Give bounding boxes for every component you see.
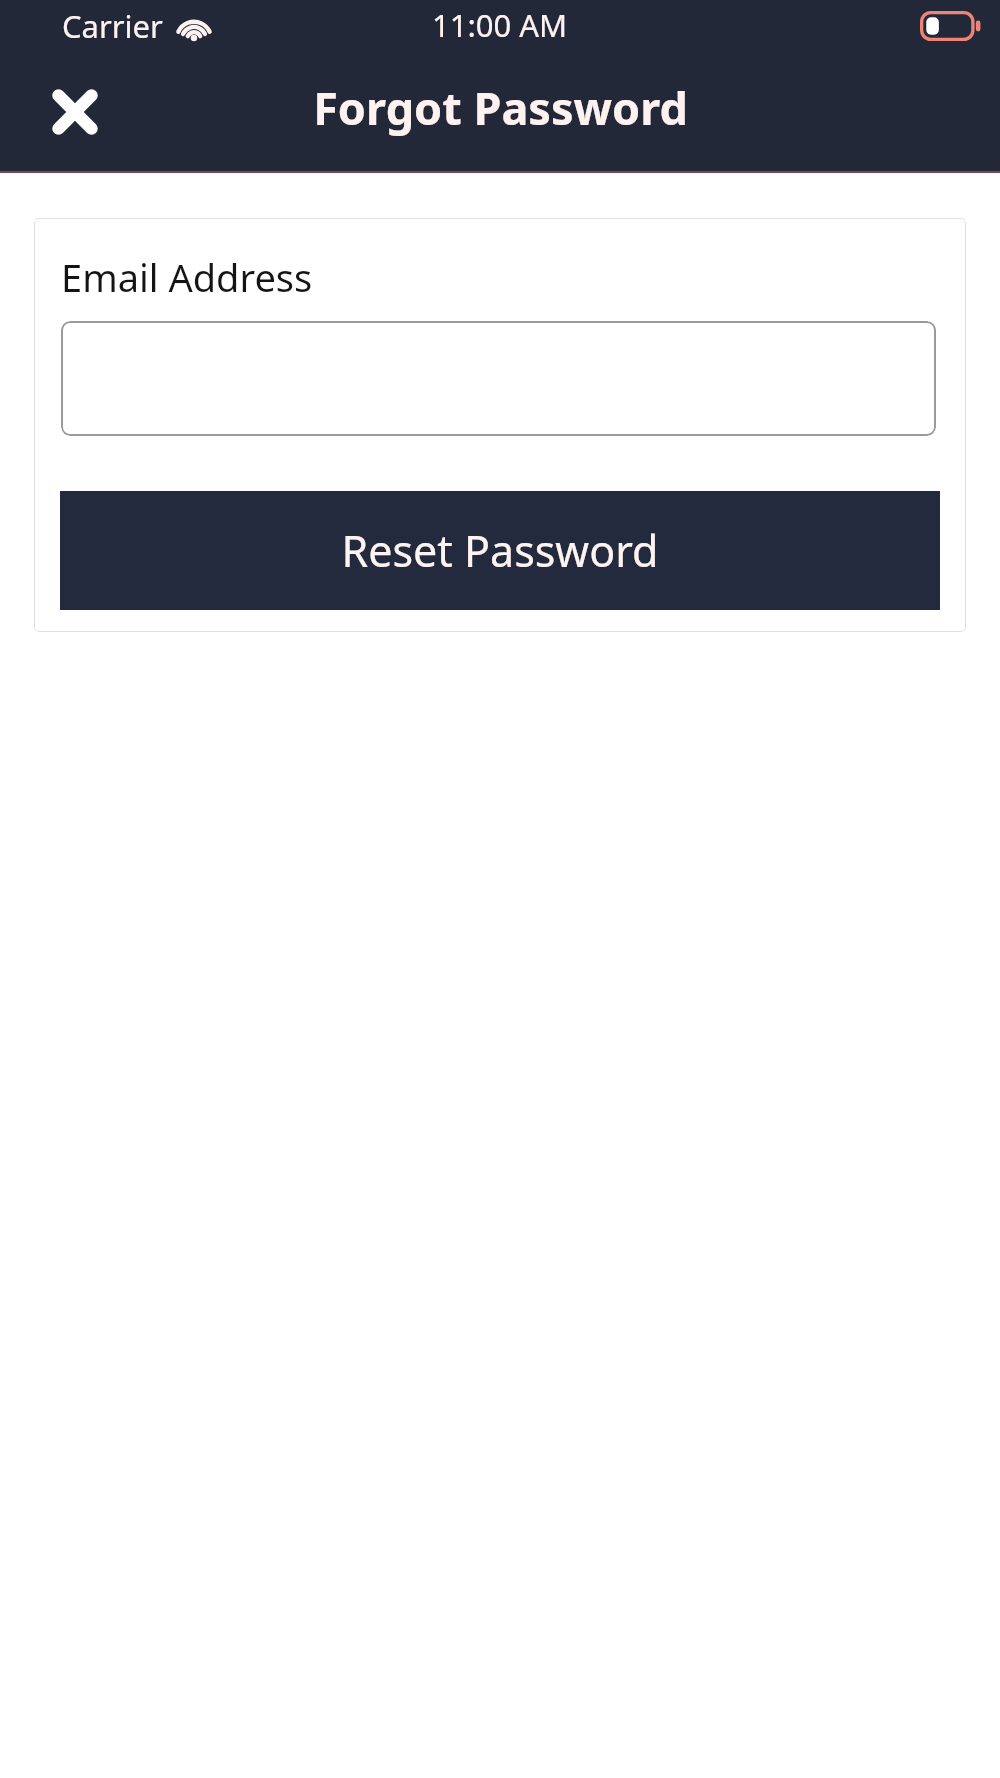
button[interactable] [61,321,936,436]
staticText: Reset Password [341,521,659,580]
staticText: Email Address [61,251,313,303]
staticText: Forgot Password [313,77,688,138]
staticText: 11:00 AM [432,4,568,46]
button[interactable]: Close [36,74,114,150]
staticText: Carrier [62,5,163,47]
button[interactable]: Reset Password [60,491,940,610]
